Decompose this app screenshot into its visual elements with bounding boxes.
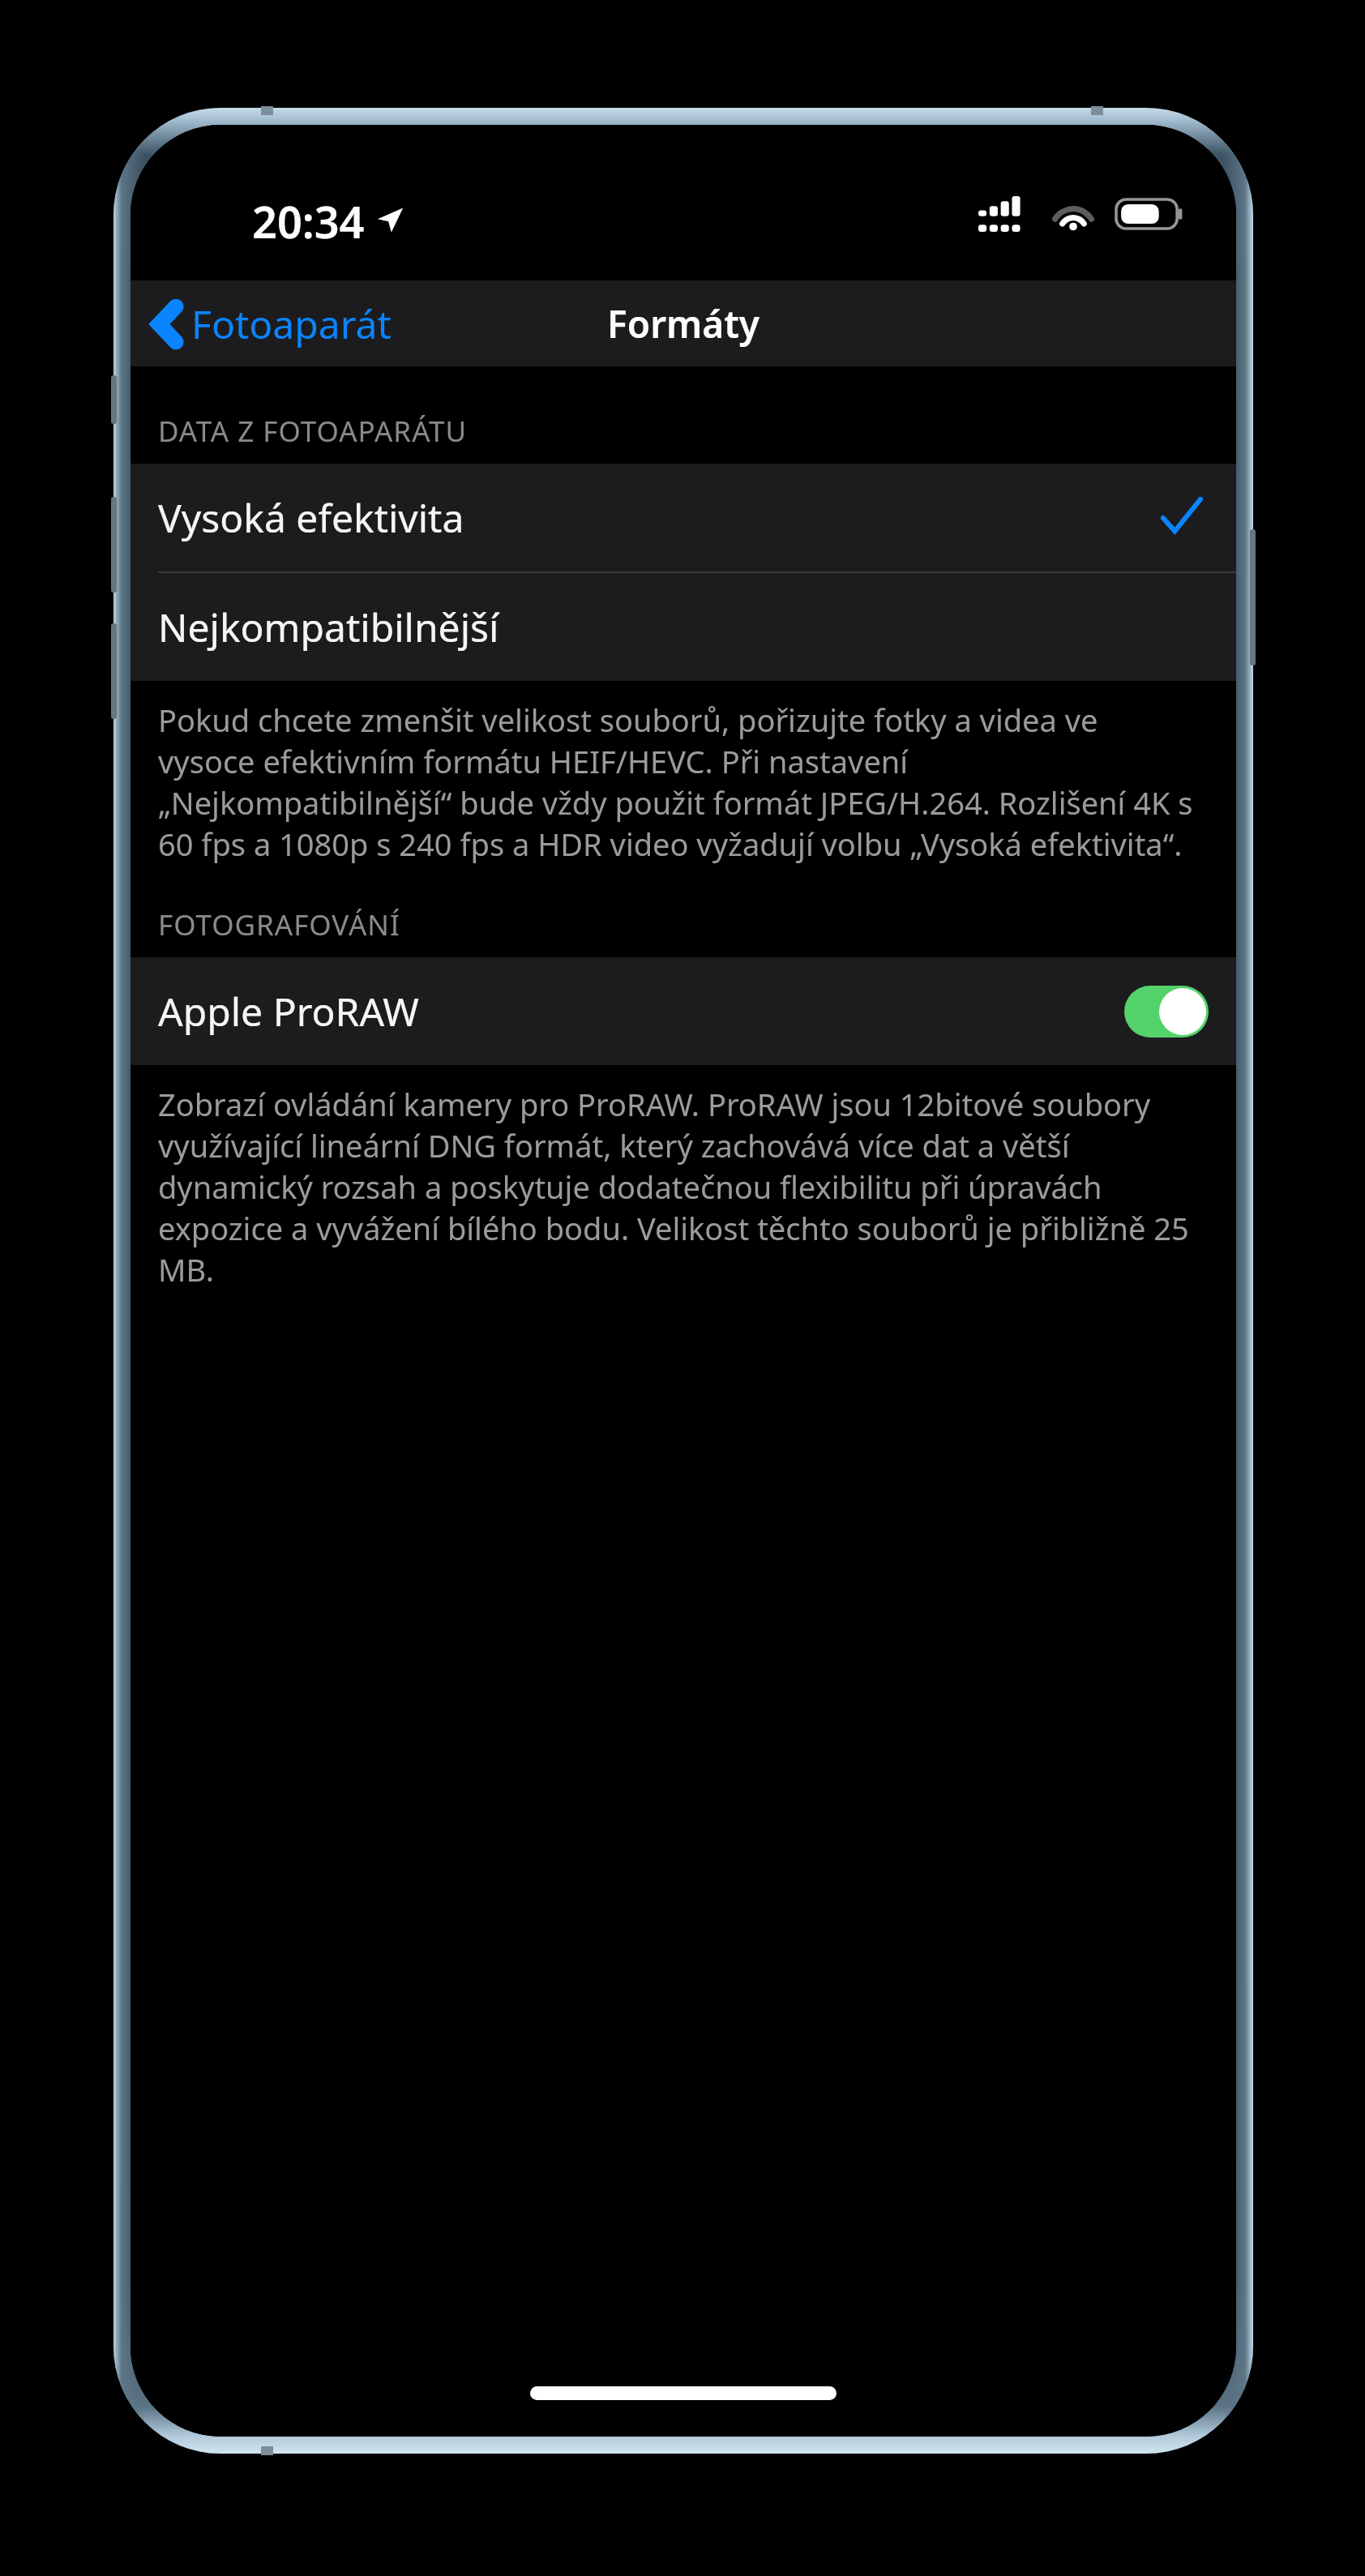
button[interactable]: Fotoaparát: [131, 285, 411, 363]
button[interactable]: Vysoká efektivita: [131, 464, 1236, 571]
staticText: Nejkompatibilnější: [158, 601, 1200, 653]
staticText: Fotoaparát: [191, 297, 392, 350]
button[interactable]: Apple ProRAW: [1124, 986, 1209, 1038]
staticText: Pokud chcete zmenšit velikost souborů, p…: [158, 699, 1202, 865]
staticText: Formáty: [607, 298, 760, 349]
button[interactable]: Apple ProRAW: [131, 957, 1236, 1065]
staticText: Zobrazí ovládání kamery pro ProRAW. ProR…: [158, 1083, 1202, 1290]
button[interactable]: Nejkompatibilnější: [131, 573, 1236, 681]
staticText: FOTOGRAFOVÁNÍ: [158, 905, 400, 944]
staticText: Apple ProRAW: [158, 985, 1124, 1038]
staticText: 20:34: [252, 191, 365, 251]
staticText: Vysoká efektivita: [158, 491, 1162, 544]
staticText: DATA Z FOTOAPARÁTU: [158, 412, 468, 451]
